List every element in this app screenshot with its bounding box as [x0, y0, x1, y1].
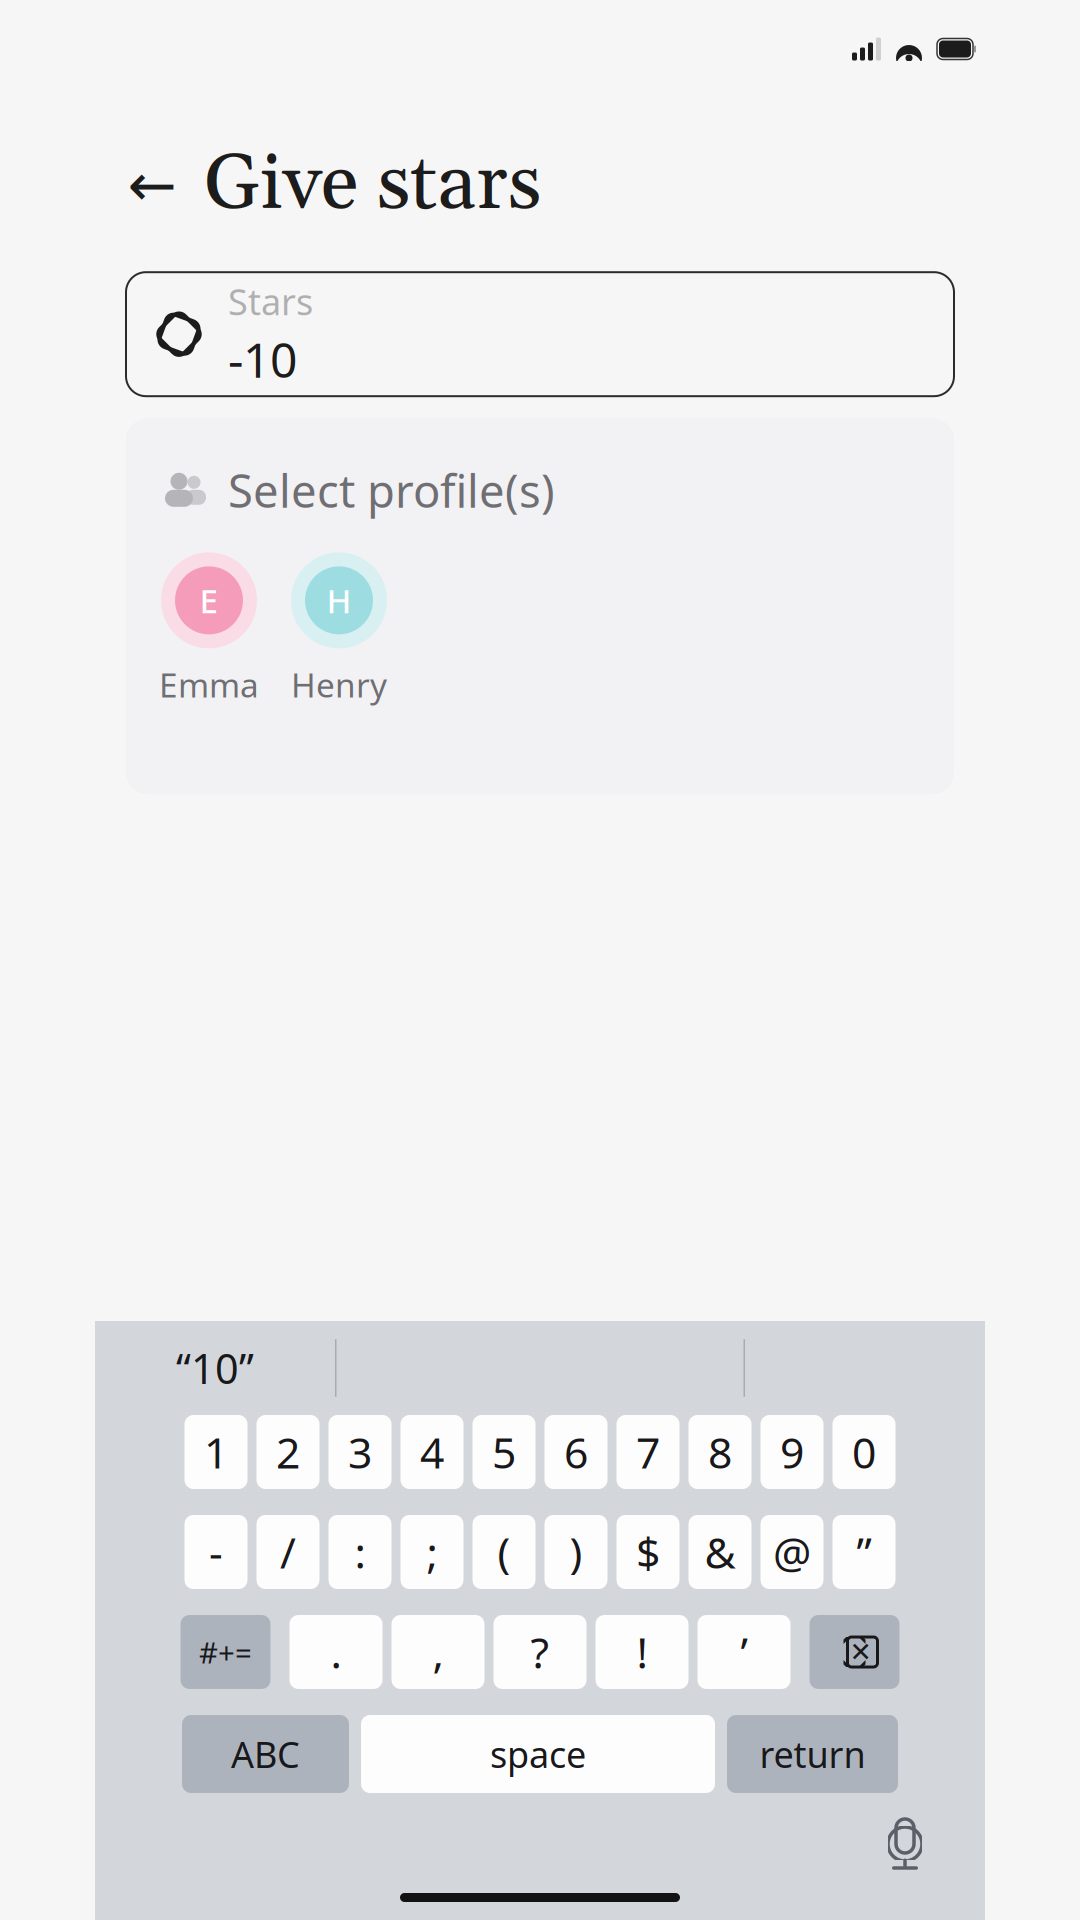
staticText: 1 — [204, 1424, 228, 1480]
button[interactable]: ( — [472, 1515, 535, 1589]
staticText: & — [704, 1524, 735, 1580]
staticText: 7 — [636, 1424, 660, 1480]
button[interactable]: ” — [832, 1515, 895, 1589]
button[interactable]: 8 — [688, 1415, 751, 1489]
button[interactable]: E — [154, 552, 264, 707]
staticText: ! — [636, 1624, 647, 1680]
staticText: , — [432, 1624, 443, 1680]
staticText: Stars — [228, 277, 313, 325]
button[interactable]: $ — [616, 1515, 679, 1589]
staticText: : — [354, 1524, 365, 1580]
staticText: . — [330, 1624, 341, 1680]
staticText: E — [199, 578, 218, 622]
button[interactable]: Dictate — [883, 1814, 927, 1872]
staticText: ← — [127, 152, 176, 218]
button[interactable]: ABC — [182, 1715, 349, 1793]
button[interactable]: Delete — [809, 1615, 899, 1689]
button[interactable]: ! — [595, 1615, 688, 1689]
staticText: - — [209, 1524, 223, 1580]
staticText: / — [280, 1524, 296, 1580]
staticText: Henry — [291, 662, 387, 707]
button[interactable]: 5 — [472, 1415, 535, 1489]
button[interactable]: ; — [400, 1515, 463, 1589]
button[interactable]: 2 — [256, 1415, 319, 1489]
staticText: @ — [773, 1524, 811, 1580]
button[interactable]: ? — [493, 1615, 586, 1689]
staticText: Select profile(s) — [228, 460, 555, 520]
button[interactable]: Stars — [126, 272, 954, 396]
staticText: 6 — [564, 1424, 588, 1480]
staticText: -10 — [228, 327, 297, 391]
button[interactable]: ’ — [697, 1615, 790, 1689]
staticText: space — [490, 1730, 586, 1778]
staticText: “10” — [176, 1341, 254, 1395]
staticText: ’ — [740, 1624, 747, 1680]
button[interactable]: 9 — [760, 1415, 823, 1489]
staticText: 0 — [852, 1424, 876, 1480]
staticText: 2 — [276, 1424, 300, 1480]
staticText: ABC — [231, 1730, 300, 1778]
staticText: ; — [426, 1524, 437, 1580]
button[interactable]: 1 — [184, 1415, 247, 1489]
staticText: 9 — [780, 1424, 804, 1480]
button[interactable]: return — [727, 1715, 898, 1793]
button[interactable]: Back — [126, 157, 178, 213]
staticText: $ — [636, 1524, 660, 1580]
button[interactable]: 7 — [616, 1415, 679, 1489]
button[interactable]: & — [688, 1515, 751, 1589]
staticText: 4 — [420, 1424, 444, 1480]
staticText: ✕ — [849, 1637, 871, 1667]
staticText: Give stars — [204, 136, 541, 234]
button[interactable]: 4 — [400, 1415, 463, 1489]
button[interactable]: #+= — [180, 1615, 270, 1689]
staticText: 5 — [492, 1424, 516, 1480]
staticText: ? — [530, 1624, 549, 1680]
staticText: #+= — [199, 1632, 252, 1671]
button[interactable]: . — [289, 1615, 382, 1689]
staticText: return — [759, 1730, 865, 1778]
button[interactable]: / — [256, 1515, 319, 1589]
button[interactable]: H — [284, 552, 394, 707]
button[interactable]: - — [184, 1515, 247, 1589]
button[interactable]: ) — [544, 1515, 607, 1589]
staticText: ” — [856, 1524, 871, 1580]
staticText: H — [326, 578, 351, 622]
button[interactable]: : — [328, 1515, 391, 1589]
button[interactable]: 0 — [832, 1415, 895, 1489]
staticText: ( — [497, 1524, 510, 1580]
staticText: Emma — [159, 662, 259, 707]
staticText: 8 — [708, 1424, 732, 1480]
staticText: 3 — [348, 1424, 372, 1480]
button[interactable]: , — [391, 1615, 484, 1689]
button[interactable]: 3 — [328, 1415, 391, 1489]
staticText: ) — [569, 1524, 582, 1580]
button[interactable]: @ — [760, 1515, 823, 1589]
button[interactable]: space — [361, 1715, 715, 1793]
button[interactable]: 6 — [544, 1415, 607, 1489]
